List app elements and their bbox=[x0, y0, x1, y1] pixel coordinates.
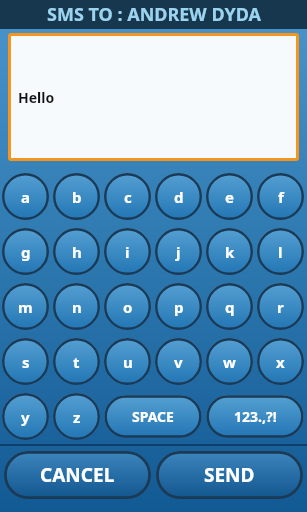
button[interactable]: b bbox=[51, 169, 102, 224]
staticText: j bbox=[176, 242, 181, 262]
button[interactable]: f bbox=[255, 169, 306, 224]
button[interactable]: r bbox=[255, 279, 306, 334]
button[interactable]: a bbox=[0, 169, 51, 224]
staticText: f bbox=[278, 187, 284, 207]
staticText: h bbox=[72, 242, 82, 262]
staticText: CANCEL bbox=[40, 462, 115, 488]
staticText: l bbox=[278, 242, 283, 262]
button[interactable]: k bbox=[204, 224, 255, 279]
staticText: y bbox=[21, 407, 30, 427]
button[interactable]: z bbox=[51, 389, 102, 444]
button[interactable]: j bbox=[153, 224, 204, 279]
button[interactable]: l bbox=[255, 224, 306, 279]
button[interactable]: i bbox=[102, 224, 153, 279]
button[interactable]: SEND bbox=[156, 451, 303, 499]
button[interactable]: w bbox=[204, 334, 255, 389]
staticText: x bbox=[276, 352, 285, 372]
staticText: b bbox=[72, 187, 82, 207]
button[interactable]: q bbox=[204, 279, 255, 334]
staticText: 123.,?! bbox=[234, 407, 277, 426]
button[interactable]: h bbox=[51, 224, 102, 279]
staticText: c bbox=[124, 187, 132, 207]
button[interactable]: 123.,?! bbox=[204, 393, 306, 440]
button[interactable]: e bbox=[204, 169, 255, 224]
staticText: s bbox=[22, 352, 30, 372]
button[interactable]: CANCEL bbox=[4, 451, 151, 499]
button[interactable]: Hello bbox=[11, 36, 296, 158]
staticText: m bbox=[18, 297, 33, 317]
staticText: r bbox=[277, 297, 284, 317]
staticText: z bbox=[73, 407, 81, 427]
staticText: a bbox=[21, 187, 30, 207]
button[interactable]: x bbox=[255, 334, 306, 389]
staticText: d bbox=[174, 187, 184, 207]
staticText: u bbox=[123, 352, 133, 372]
button[interactable]: o bbox=[102, 279, 153, 334]
button[interactable]: d bbox=[153, 169, 204, 224]
staticText: e bbox=[225, 187, 234, 207]
staticText: w bbox=[223, 352, 236, 372]
button[interactable]: p bbox=[153, 279, 204, 334]
staticText: g bbox=[21, 242, 31, 262]
button[interactable]: u bbox=[102, 334, 153, 389]
staticText: k bbox=[225, 242, 235, 262]
staticText: n bbox=[72, 297, 82, 317]
staticText: v bbox=[174, 352, 183, 372]
button[interactable]: m bbox=[0, 279, 51, 334]
button[interactable]: g bbox=[0, 224, 51, 279]
staticText: Hello bbox=[18, 88, 55, 107]
staticText: o bbox=[123, 297, 133, 317]
button[interactable]: SPACE bbox=[102, 393, 204, 440]
staticText: t bbox=[73, 352, 80, 372]
staticText: SMS TO : ANDREW DYDA bbox=[47, 2, 261, 27]
staticText: q bbox=[225, 297, 235, 317]
button[interactable]: v bbox=[153, 334, 204, 389]
button[interactable]: c bbox=[102, 169, 153, 224]
button[interactable]: t bbox=[51, 334, 102, 389]
staticText: SEND bbox=[204, 462, 255, 488]
button[interactable]: y bbox=[0, 389, 51, 444]
button[interactable]: n bbox=[51, 279, 102, 334]
staticText: SPACE bbox=[132, 407, 174, 426]
button[interactable]: s bbox=[0, 334, 51, 389]
staticText: i bbox=[125, 242, 130, 262]
staticText: p bbox=[174, 297, 184, 317]
